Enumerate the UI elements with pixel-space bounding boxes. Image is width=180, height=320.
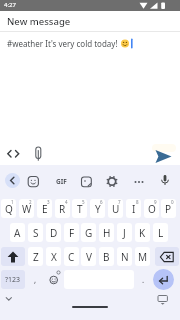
button[interactable]: Q [1, 199, 16, 218]
staticText: R [59, 202, 66, 216]
button[interactable]: A [10, 223, 25, 242]
button[interactable]: I [126, 199, 141, 218]
button[interactable]: ?123 [1, 270, 25, 289]
button[interactable]: N [117, 247, 132, 266]
staticText: , [34, 274, 37, 285]
staticText: 6 [100, 199, 103, 205]
button[interactable]: M [135, 247, 150, 266]
button[interactable]: B [99, 247, 114, 266]
button[interactable]: . [136, 270, 151, 289]
staticText: 4 [65, 199, 68, 205]
button[interactable]: U [108, 199, 123, 218]
button[interactable]: C [64, 247, 79, 266]
staticText: E [42, 202, 48, 216]
button[interactable] [46, 270, 61, 289]
button[interactable]: O [144, 199, 159, 218]
staticText: W [22, 202, 32, 216]
button[interactable]: P [161, 199, 176, 218]
button[interactable]: E [37, 199, 52, 218]
staticText: T [77, 202, 83, 216]
staticText: 9 [154, 199, 157, 205]
staticText: N [121, 250, 129, 264]
button[interactable] [155, 293, 170, 306]
staticText: GIF [56, 177, 67, 186]
staticText: M [138, 250, 148, 264]
button[interactable] [131, 174, 147, 189]
staticText: F [69, 226, 75, 240]
button[interactable]: J [117, 223, 132, 242]
staticText: P [165, 202, 172, 216]
staticText: S [33, 226, 39, 240]
staticText: 0 [171, 199, 174, 205]
button[interactable]: T [72, 199, 87, 218]
button[interactable] [153, 269, 174, 290]
button[interactable] [5, 173, 20, 188]
button[interactable]: G [81, 223, 96, 242]
button[interactable] [2, 143, 28, 163]
staticText: 8 [136, 199, 139, 205]
staticText: B [103, 250, 110, 264]
staticText: V [86, 250, 92, 264]
staticText: 7 [118, 199, 121, 205]
button[interactable] [2, 293, 15, 305]
staticText: C [68, 250, 75, 264]
staticText: J [123, 226, 126, 240]
button[interactable]: X [46, 247, 61, 266]
button[interactable]: W [19, 199, 34, 218]
staticText: 2 [29, 199, 32, 205]
staticText: Q [5, 202, 13, 216]
staticText: Y [95, 202, 101, 216]
staticText: . [142, 274, 145, 285]
button[interactable] [79, 174, 94, 189]
button[interactable] [105, 174, 119, 189]
staticText: H [103, 226, 111, 240]
button[interactable]: L [153, 223, 168, 242]
button[interactable]: F [64, 223, 79, 242]
button[interactable]: K [135, 223, 150, 242]
button[interactable]: D [46, 223, 61, 242]
button[interactable]: H [99, 223, 114, 242]
button[interactable]: Y [90, 199, 105, 218]
staticText: ?123 [5, 275, 21, 285]
button[interactable] [150, 145, 176, 167]
staticText: 4:27 [4, 1, 16, 9]
staticText: L [158, 226, 164, 240]
button[interactable] [158, 172, 172, 189]
staticText: Z [33, 250, 39, 264]
staticText: G [85, 226, 93, 240]
button[interactable]: S [28, 223, 43, 242]
staticText: O [148, 202, 156, 216]
staticText: #weather It's very cold today! [7, 38, 118, 49]
button[interactable]: GIF [53, 174, 70, 189]
button[interactable] [26, 174, 41, 189]
button[interactable]: , [28, 270, 43, 289]
staticText: A [14, 226, 21, 240]
button[interactable]: New message [0, 11, 180, 31]
button[interactable] [72, 306, 108, 308]
button[interactable]: V [81, 247, 96, 266]
button[interactable] [31, 144, 47, 164]
staticText: 5 [82, 199, 85, 205]
staticText: New message [7, 15, 71, 28]
staticText: D [50, 226, 58, 240]
button[interactable]: R [55, 199, 70, 218]
button[interactable] [155, 247, 179, 266]
staticText: K [139, 226, 146, 240]
staticText: 3 [47, 199, 50, 205]
staticText: I [132, 202, 136, 216]
button[interactable] [1, 247, 25, 266]
button[interactable]: Z [28, 247, 43, 266]
staticText: U [112, 202, 120, 216]
staticText: 1 [11, 199, 14, 205]
staticText: X [51, 250, 57, 264]
